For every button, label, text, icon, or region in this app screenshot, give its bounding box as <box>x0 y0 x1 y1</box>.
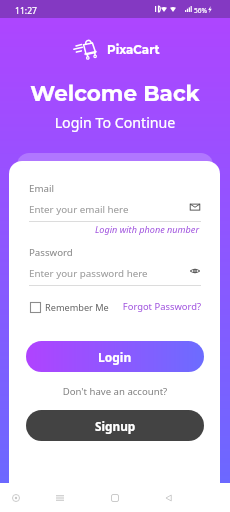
button[interactable]: Forgot Password? <box>110 300 201 313</box>
staticText: Login To Continue <box>0 113 230 132</box>
staticText: Signup <box>95 418 136 434</box>
staticText: Remember Me <box>45 301 109 313</box>
staticText: PixaCart <box>107 43 160 57</box>
button[interactable]: Back <box>163 492 175 504</box>
staticText: 11:27 <box>15 5 37 17</box>
staticText: Email <box>29 182 54 195</box>
staticText: Don't have an account? <box>0 385 230 398</box>
button[interactable]: Show password <box>189 265 201 277</box>
button[interactable]: Assistant <box>10 492 22 504</box>
button[interactable]: Recent apps <box>54 492 66 504</box>
staticText: Enter your password here <box>29 267 148 280</box>
staticText: 56% <box>194 6 208 15</box>
staticText: Enter your email here <box>29 203 129 216</box>
staticText: Login <box>98 349 132 365</box>
button[interactable]: Login with phone number <box>0 223 199 235</box>
button[interactable]: Remember Me <box>30 301 109 313</box>
button[interactable]: Signup <box>26 410 204 441</box>
staticText: Welcome Back <box>0 80 230 106</box>
button[interactable]: Login <box>26 341 204 372</box>
button[interactable]: Email <box>189 201 201 213</box>
staticText: Password <box>29 246 73 259</box>
button[interactable]: Home <box>109 492 121 504</box>
